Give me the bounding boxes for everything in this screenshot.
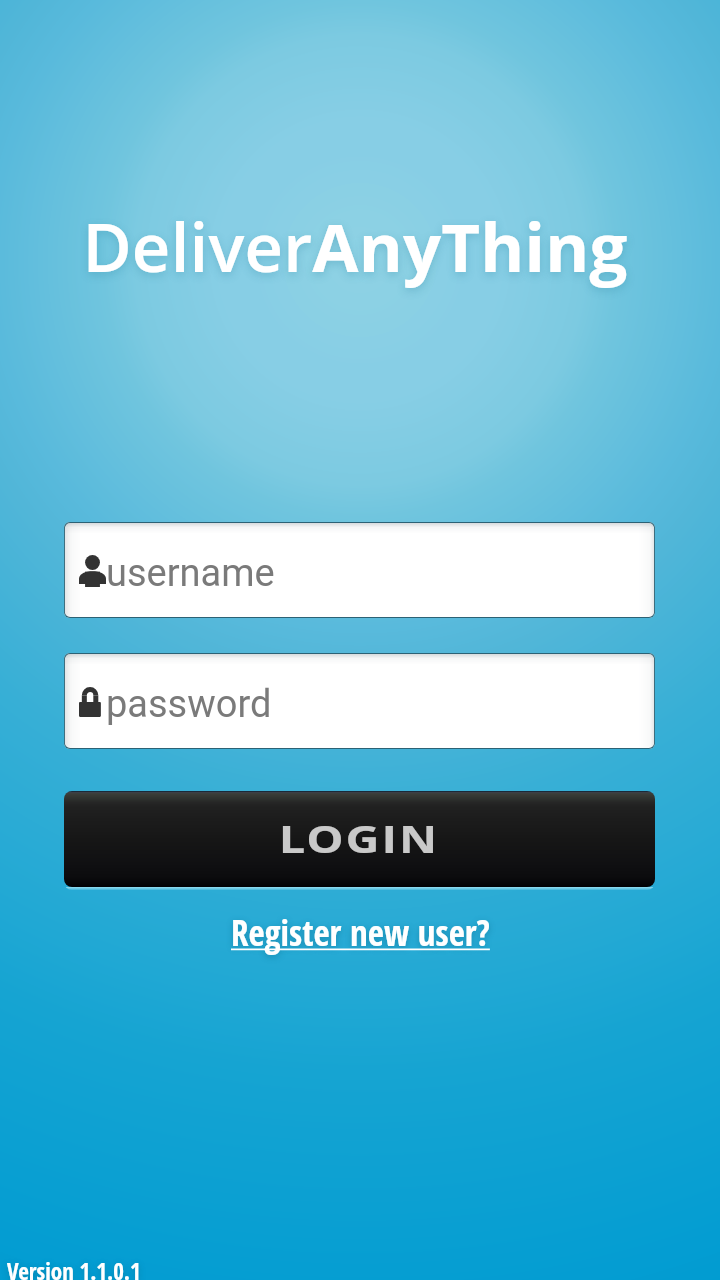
button[interactable]: password — [64, 653, 655, 749]
staticText: LOGIN — [279, 812, 439, 864]
staticText: Register new user? — [231, 909, 490, 957]
button[interactable]: Register new user? — [231, 909, 490, 957]
staticText: password — [106, 682, 272, 727]
staticText: Version 1.1.0.1 — [7, 1255, 141, 1280]
button[interactable]: username — [64, 522, 655, 618]
staticText: DeliverAnyThing — [82, 200, 628, 291]
button[interactable]: LOGIN — [64, 791, 655, 887]
staticText: username — [106, 551, 275, 596]
